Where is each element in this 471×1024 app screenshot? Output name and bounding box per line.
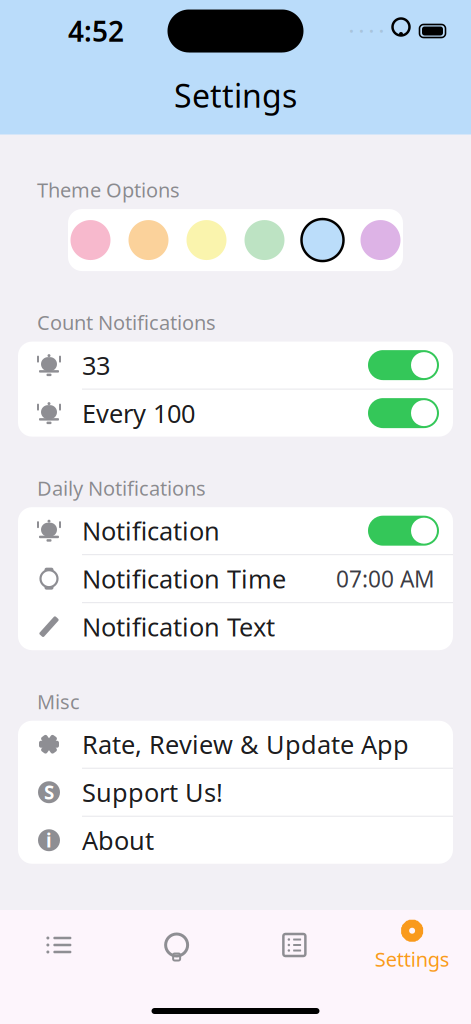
staticText: Every 100	[82, 396, 195, 430]
staticText: Notification	[82, 514, 220, 547]
button[interactable]: Notification Time	[18, 555, 453, 602]
staticText: Notification Text	[82, 610, 275, 643]
staticText: Daily Notifications	[37, 475, 206, 501]
button[interactable]: List	[0, 918, 118, 972]
button[interactable]: Every 100	[18, 390, 453, 437]
button[interactable]: i	[18, 817, 453, 864]
button[interactable]: Records	[235, 918, 353, 972]
button[interactable]: Theme colour 3	[184, 218, 229, 263]
button[interactable]: Notification	[18, 507, 453, 554]
staticText: 4:52	[68, 12, 124, 50]
staticText: Misc	[37, 688, 80, 715]
button[interactable]: Theme colour 1	[68, 218, 113, 263]
staticText: Rate, Review & Update App	[82, 727, 409, 761]
button[interactable]: 33	[18, 342, 453, 389]
staticText: 07:00 AM	[336, 564, 435, 594]
button[interactable]: Counter	[118, 918, 236, 972]
button[interactable]: Theme colour 6	[358, 218, 403, 263]
button[interactable]: Settings	[353, 918, 471, 972]
staticText: Theme Options	[37, 176, 180, 203]
staticText: Count Notifications	[37, 309, 216, 336]
button[interactable]: Theme colour 4	[242, 218, 287, 263]
staticText: Settings	[375, 946, 450, 972]
staticText: About	[82, 823, 154, 857]
staticText: Notification Time	[82, 562, 286, 595]
button[interactable]: Notification Text	[18, 603, 453, 650]
button[interactable]: Rate, Review & Update App	[18, 721, 453, 768]
staticText: · · · ·	[349, 19, 384, 42]
staticText: Support Us!	[82, 775, 223, 809]
staticText: S	[44, 780, 54, 805]
staticText: Settings	[174, 74, 297, 116]
staticText: i	[46, 828, 52, 853]
button[interactable]: Theme colour 5	[300, 218, 345, 263]
staticText: 33	[82, 348, 110, 382]
button[interactable]: S	[18, 769, 453, 816]
button[interactable]: Theme colour 2	[126, 218, 171, 263]
